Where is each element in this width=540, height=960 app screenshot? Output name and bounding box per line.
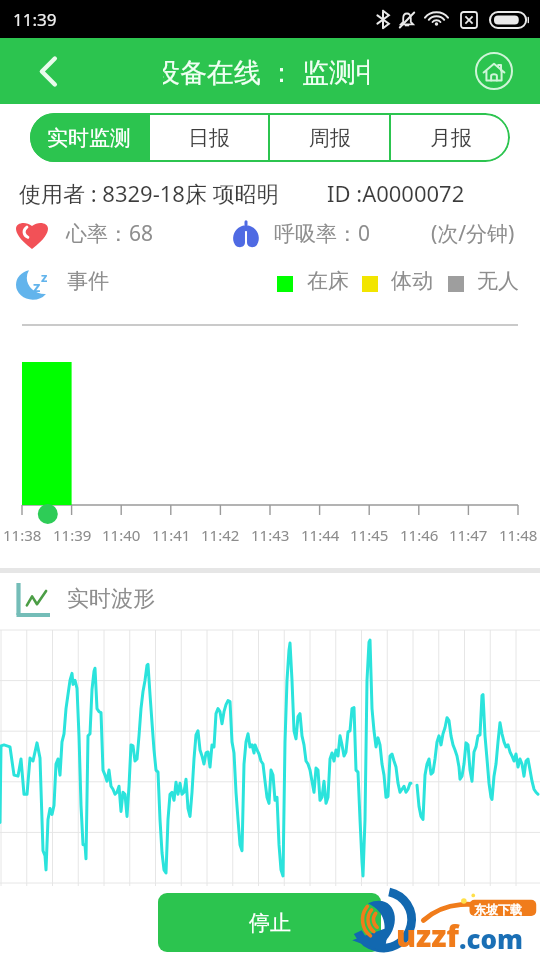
button[interactable]: 周报 xyxy=(270,113,389,162)
button[interactable]: Back xyxy=(25,48,71,94)
staticText: 11:40 xyxy=(102,525,141,545)
staticText: ID :A0000072 xyxy=(327,178,465,208)
staticText: 体动 xyxy=(391,268,433,294)
staticText: 11:39 xyxy=(13,8,57,31)
staticText: 11:39 xyxy=(53,525,92,545)
staticText: 11:47 xyxy=(449,525,488,545)
staticText: (次/分钟) xyxy=(431,219,515,248)
staticText: 停止 xyxy=(249,910,291,936)
staticText: 11:45 xyxy=(350,525,389,545)
staticText: 呼吸率：0 xyxy=(274,219,371,248)
staticText: 东坡下载 xyxy=(474,902,522,917)
staticText: z xyxy=(33,276,41,296)
button[interactable]: 实时监测 xyxy=(30,113,148,162)
staticText: 11:48 xyxy=(499,525,538,545)
staticText: .com xyxy=(459,921,524,956)
staticText: 无人 xyxy=(477,268,519,294)
button[interactable]: Home xyxy=(469,46,519,96)
staticText: 实时监测 xyxy=(47,125,131,151)
staticText: 11:38 xyxy=(3,525,42,545)
staticText: 11:42 xyxy=(201,525,240,545)
staticText: 事件 xyxy=(67,268,109,294)
staticText: 周报 xyxy=(309,125,351,151)
staticText: 日报 xyxy=(188,125,230,151)
button[interactable]: 日报 xyxy=(150,113,268,162)
staticText: 设备在线 ： 监测中 xyxy=(163,53,369,90)
staticText: 11:44 xyxy=(301,525,340,545)
staticText: 使用者 : 8329-18床 项昭明 xyxy=(19,178,279,208)
staticText: 心率：68 xyxy=(66,219,154,248)
staticText: uzzf xyxy=(396,915,459,956)
staticText: 实时波形 xyxy=(67,585,155,613)
staticText: 在床 xyxy=(307,268,349,294)
button[interactable]: 停止 xyxy=(158,893,381,952)
staticText: 月报 xyxy=(430,125,472,151)
staticText: z xyxy=(41,268,48,286)
staticText: 11:43 xyxy=(251,525,290,545)
staticText: 11:41 xyxy=(152,525,191,545)
staticText: 11:46 xyxy=(400,525,439,545)
button[interactable]: 月报 xyxy=(391,113,510,162)
